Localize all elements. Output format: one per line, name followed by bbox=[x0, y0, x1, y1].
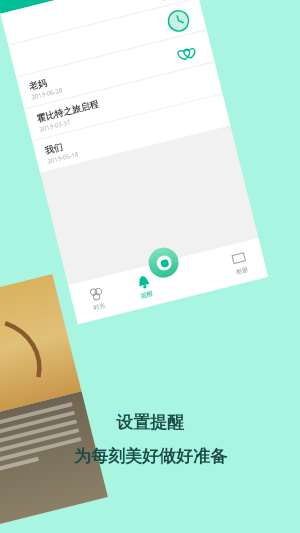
other: Clock bbox=[165, 7, 192, 34]
staticText: 老妈 bbox=[28, 77, 48, 92]
staticText: 时光 bbox=[92, 301, 106, 312]
other: Reminders bbox=[135, 273, 152, 290]
other: Anniversary bbox=[173, 39, 200, 66]
other: Birthday bbox=[157, 0, 184, 2]
button[interactable]: Clock bbox=[8, 0, 207, 78]
button[interactable]: 我们 bbox=[32, 94, 231, 174]
staticText: 提醒 bbox=[140, 289, 154, 300]
other: Album bbox=[230, 250, 247, 267]
staticText: 2019-03-31 bbox=[39, 118, 72, 133]
staticText: 为每刻美好做好准备 bbox=[74, 446, 227, 467]
button[interactable]: 霍比特之旅启程 bbox=[24, 62, 223, 142]
button[interactable]: Birthday bbox=[0, 0, 199, 46]
other: Timeline bbox=[88, 285, 105, 302]
staticText: 相册 bbox=[235, 266, 249, 276]
staticText: 霍比特之旅启程 bbox=[36, 98, 99, 124]
staticText: 我们 bbox=[44, 141, 64, 156]
staticText: 2019-06-28 bbox=[31, 86, 64, 101]
button[interactable]: Reminders bbox=[116, 262, 173, 312]
button[interactable]: Add bbox=[145, 244, 182, 281]
button[interactable]: Timeline bbox=[68, 273, 125, 324]
staticText: 设置提醒 bbox=[116, 412, 184, 433]
staticText: 2019-05-18 bbox=[47, 150, 80, 165]
button[interactable]: Album bbox=[211, 238, 268, 289]
button[interactable]: 老妈 bbox=[16, 30, 215, 110]
